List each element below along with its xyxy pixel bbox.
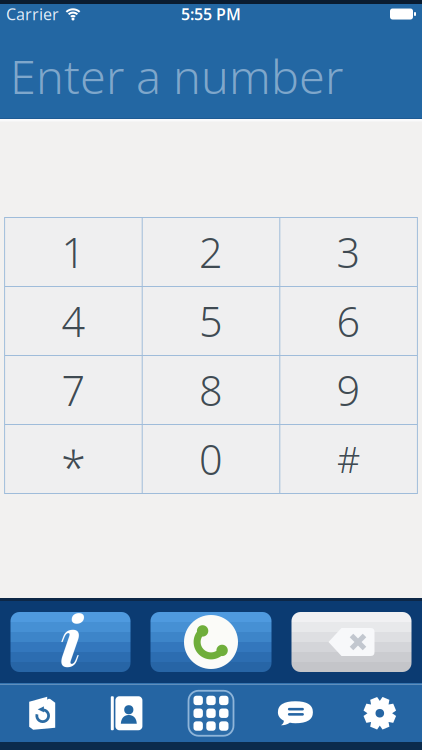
button[interactable]: * — [5, 425, 142, 493]
staticText: # — [337, 435, 360, 483]
staticText: Enter a number — [10, 45, 343, 107]
button[interactable]: 1 — [5, 218, 142, 286]
button[interactable]: 5 — [143, 287, 279, 355]
button[interactable]: 6 — [280, 287, 417, 355]
button[interactable]: 2 — [143, 218, 279, 286]
button[interactable]: # — [280, 425, 417, 493]
staticText: 4 — [61, 294, 85, 348]
button[interactable]: Recents — [0, 684, 84, 742]
staticText: 5 — [199, 294, 223, 348]
button[interactable]: 3 — [280, 218, 417, 286]
staticText: 5:55 PM — [181, 3, 241, 25]
staticText: 1 — [61, 225, 85, 279]
staticText: 3 — [337, 225, 361, 279]
staticText: 6 — [337, 294, 361, 348]
button[interactable]: 0 — [143, 425, 279, 493]
button[interactable]: Info — [10, 612, 130, 672]
button[interactable]: Call — [150, 612, 271, 672]
button[interactable]: Settings — [338, 684, 422, 742]
staticText: 2 — [199, 225, 223, 279]
staticText: * — [61, 437, 86, 497]
staticText: 9 — [337, 363, 361, 417]
button[interactable]: Delete — [291, 612, 411, 672]
staticText: Carrier — [6, 3, 59, 25]
button[interactable]: Enter a number — [0, 45, 422, 107]
button[interactable]: Contacts — [84, 684, 169, 742]
button[interactable]: 8 — [143, 356, 279, 424]
button[interactable]: Keypad — [169, 684, 253, 742]
button[interactable]: 4 — [5, 287, 142, 355]
staticText: 7 — [61, 363, 85, 417]
staticText: i — [59, 592, 81, 684]
staticText: 0 — [199, 432, 223, 486]
staticText: 8 — [199, 363, 223, 417]
button[interactable]: 9 — [280, 356, 417, 424]
button[interactable]: 7 — [5, 356, 142, 424]
button[interactable]: Messages — [253, 684, 338, 742]
